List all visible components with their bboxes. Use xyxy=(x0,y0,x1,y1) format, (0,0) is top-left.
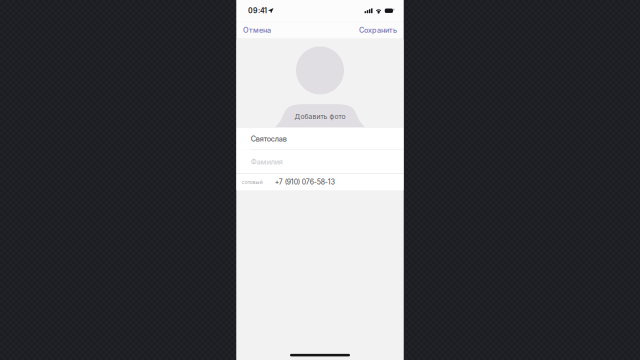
button[interactable]: Святослав xyxy=(236,128,403,149)
staticText: 09:41 xyxy=(248,6,267,15)
button[interactable]: Сохранить xyxy=(353,21,403,39)
button[interactable]: Добавить фото xyxy=(236,39,403,128)
button[interactable]: Отмена xyxy=(236,21,277,39)
staticText: Добавить фото xyxy=(294,113,345,121)
button[interactable]: Фамилия xyxy=(236,150,403,173)
staticText: Отмена xyxy=(243,26,271,34)
staticText: Святослав xyxy=(251,134,287,143)
staticText: +7 (910) 076-58-13 xyxy=(275,178,335,186)
staticText: сотовый xyxy=(242,179,263,185)
button[interactable]: сотовый xyxy=(236,174,403,190)
staticText: Сохранить xyxy=(359,26,397,34)
staticText: Фамилия xyxy=(251,157,283,166)
